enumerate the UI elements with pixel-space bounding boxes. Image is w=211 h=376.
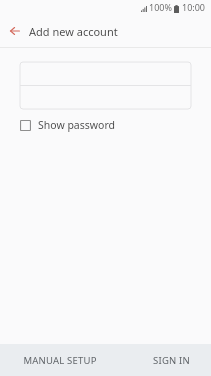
staticText: 10:00 (182, 1, 206, 13)
staticText: SIGN IN (153, 354, 190, 367)
button[interactable]: Show password (20, 118, 115, 132)
staticText: MANUAL SETUP (23, 354, 97, 367)
staticText: Show password (38, 118, 115, 132)
button[interactable]: SIGN IN (141, 344, 202, 376)
button[interactable] (20, 85, 191, 109)
button[interactable]: MANUAL SETUP (11, 344, 109, 376)
staticText: 100% (149, 1, 172, 13)
staticText: Add new account (29, 24, 118, 39)
button[interactable]: Back (3, 19, 27, 43)
